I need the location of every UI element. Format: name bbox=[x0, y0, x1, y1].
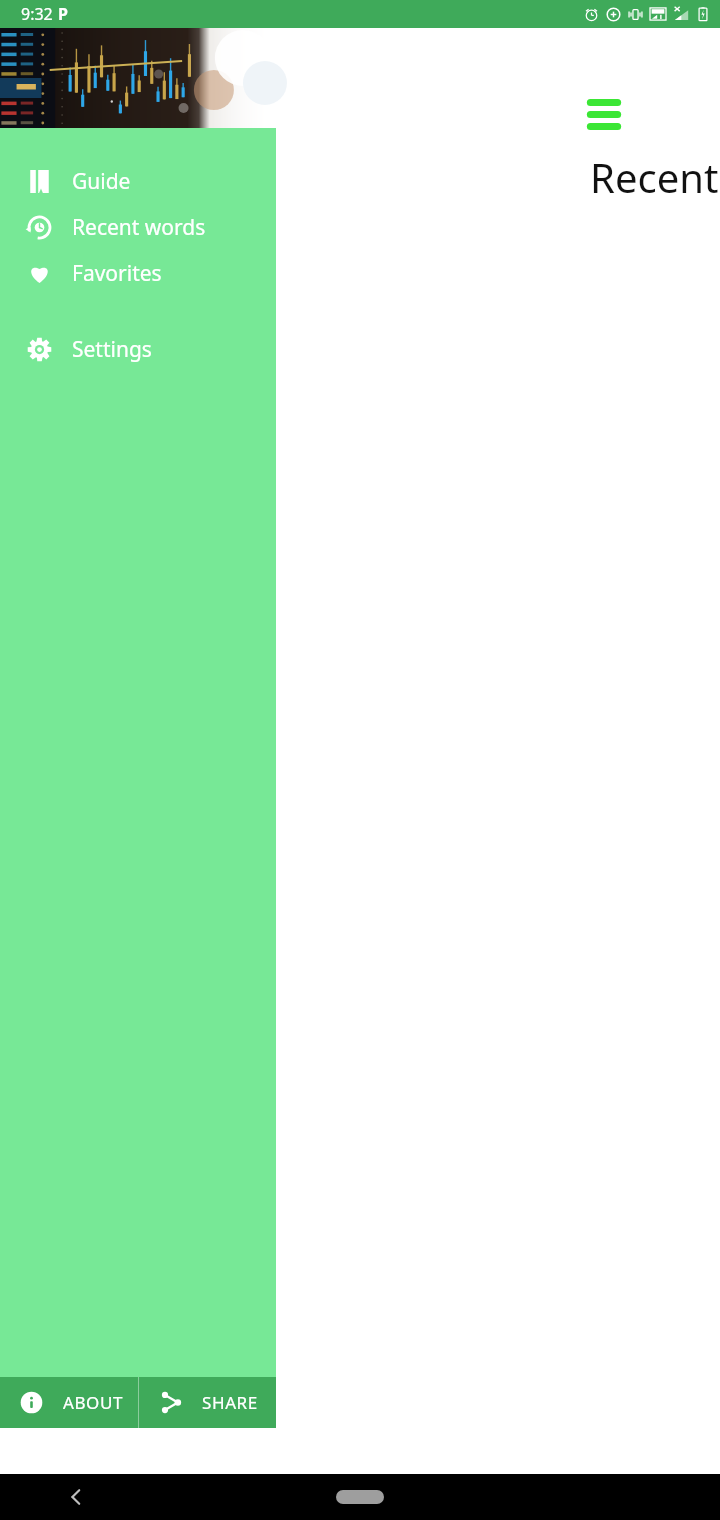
button[interactable]: Favorites bbox=[0, 250, 276, 296]
button[interactable]: Guide bbox=[0, 158, 276, 204]
staticText: Settings bbox=[72, 335, 152, 364]
button[interactable]: Back bbox=[60, 1481, 92, 1513]
staticText: Recent words bbox=[590, 150, 720, 204]
staticText: Favorites bbox=[72, 259, 162, 288]
button[interactable]: Open navigation menu bbox=[576, 84, 632, 140]
button[interactable]: Recent words bbox=[0, 204, 276, 250]
staticText: Guide bbox=[72, 167, 131, 196]
staticText: 9:32 bbox=[21, 3, 53, 25]
button[interactable]: Home bbox=[336, 1490, 384, 1504]
staticText: SHARE bbox=[202, 1391, 258, 1414]
staticText: Recent words bbox=[72, 213, 206, 242]
staticText: P bbox=[58, 3, 68, 25]
button[interactable]: Settings bbox=[0, 326, 276, 372]
button[interactable]: SHARE bbox=[139, 1377, 276, 1428]
staticText: ABOUT bbox=[63, 1391, 124, 1414]
button[interactable]: ABOUT bbox=[0, 1377, 138, 1428]
